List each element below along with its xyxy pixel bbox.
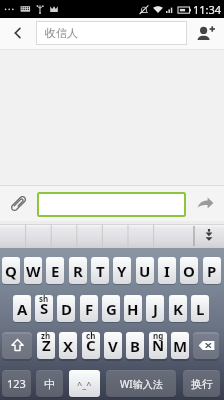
button[interactable]: Attach [0,186,37,221]
staticText: 换行 [191,377,213,391]
button[interactable]: U [136,257,154,284]
button[interactable]: Enter [183,370,220,397]
staticText: H [127,299,139,319]
staticText: 123 [7,376,26,391]
staticText: I [164,261,170,281]
staticText: 中 [44,377,55,391]
button[interactable]: Shift [2,332,32,359]
button[interactable]: ng [149,332,167,359]
staticText: V [108,336,118,356]
button[interactable]: zh [37,332,55,359]
button[interactable]: Message [37,192,186,217]
button[interactable]: V [104,332,122,359]
staticText: N [152,335,165,355]
button[interactable]: Space [106,370,176,397]
button[interactable]: Add contact [187,18,224,48]
button[interactable]: P [203,257,221,284]
button[interactable]: O [180,257,198,284]
button[interactable]: L [191,295,209,322]
staticText: X [63,336,74,356]
staticText: R [73,261,83,281]
button[interactable]: R [69,257,87,284]
button[interactable]: Emoticon [69,370,100,397]
staticText: J [153,299,158,319]
button[interactable]: ch [82,332,100,359]
staticText: G [106,299,117,319]
staticText: Y [117,261,127,281]
staticText: E [51,261,60,281]
staticText: U [139,261,151,281]
staticText: P [207,261,217,281]
staticText: ng [153,332,164,341]
staticText: S [40,298,49,318]
staticText: Q [5,261,17,281]
button[interactable]: B [126,332,144,359]
button[interactable]: F [80,295,98,322]
staticText: C [86,335,96,355]
staticText: D [61,299,72,319]
staticText: K [173,299,183,319]
button[interactable]: Y [113,257,131,284]
staticText: Z [42,335,51,355]
staticText: O [183,261,195,281]
staticText: A [17,299,28,319]
button[interactable]: Send [187,186,224,221]
staticText: zh [41,332,51,341]
button[interactable]: G [102,295,120,322]
button[interactable]: Chinese input [36,370,63,397]
button[interactable]: A [13,295,31,322]
button[interactable]: X [59,332,77,359]
button[interactable]: J [146,295,164,322]
button[interactable]: Back [0,18,36,48]
staticText: W [26,261,41,281]
staticText: sh [39,295,49,304]
staticText: L [196,299,205,319]
staticText: WI输入法 [120,377,163,391]
button[interactable]: Numbers [2,370,31,397]
button[interactable]: E [46,257,64,284]
button[interactable]: Backspace [193,332,219,359]
button[interactable]: W [24,257,42,284]
button[interactable]: sh [35,295,53,322]
button[interactable]: Q [2,257,20,284]
button[interactable]: 收信人 [36,21,187,45]
staticText: 收信人 [45,26,78,40]
staticText: ^_^ [77,378,92,390]
staticText: F [85,299,94,319]
staticText: ch [86,332,96,341]
button[interactable]: T [91,257,109,284]
staticText: T [96,261,105,281]
button[interactable]: H [124,295,142,322]
button[interactable]: K [169,295,187,322]
button[interactable]: I [158,257,176,284]
staticText: 11:34 [193,2,222,17]
staticText: M [173,336,188,356]
button[interactable]: M [171,332,189,359]
button[interactable]: D [57,295,75,322]
staticText: B [130,336,140,356]
